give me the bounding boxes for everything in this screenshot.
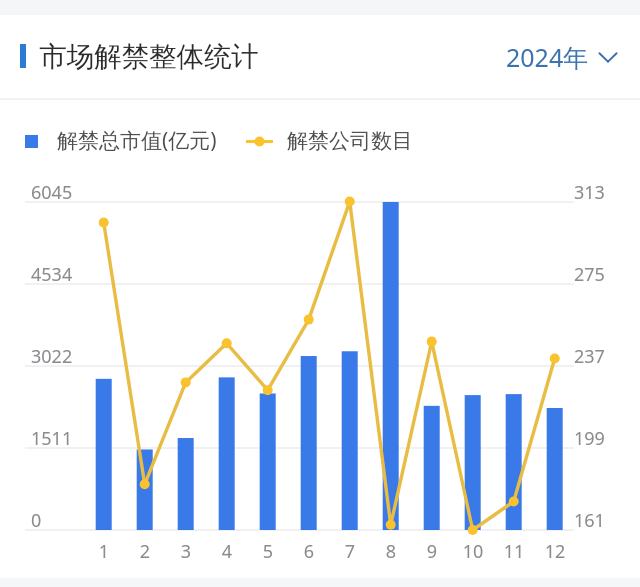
staticText: 解禁总市值(亿元) xyxy=(57,126,217,155)
staticText: 市场解禁整体统计 xyxy=(39,40,259,75)
staticText: 237 xyxy=(574,344,605,369)
staticText: 7 xyxy=(330,539,370,564)
staticText: 0 xyxy=(31,508,42,533)
staticText: 12 xyxy=(535,539,575,564)
staticText: 8 xyxy=(371,539,411,564)
staticText: 9 xyxy=(412,539,452,564)
button[interactable]: 解禁总市值(亿元) xyxy=(21,123,221,160)
staticText: 5 xyxy=(248,539,288,564)
staticText: 解禁公司数目 xyxy=(287,128,413,154)
staticText: 275 xyxy=(574,262,605,287)
other: Monthly share-unlock statistics chart xyxy=(0,0,640,587)
staticText: 1511 xyxy=(31,426,73,451)
staticText: 4 xyxy=(207,539,247,564)
staticText: 11 xyxy=(494,539,534,564)
staticText: 6 xyxy=(289,539,329,564)
staticText: 2024年 xyxy=(506,40,589,74)
button[interactable]: 市场解禁整体统计 xyxy=(12,26,273,85)
staticText: 6045 xyxy=(31,180,73,205)
staticText: 2 xyxy=(125,539,165,564)
button[interactable]: 解禁公司数目 xyxy=(242,123,417,157)
staticText: 161 xyxy=(574,508,605,533)
staticText: 313 xyxy=(574,180,605,205)
staticText: 3 xyxy=(166,539,206,564)
staticText: 199 xyxy=(574,426,605,451)
staticText: 10 xyxy=(453,539,493,564)
staticText: 1 xyxy=(84,539,124,564)
staticText: 3022 xyxy=(31,344,73,369)
button[interactable]: Select year, currently 2024 xyxy=(498,36,627,78)
staticText: 4534 xyxy=(31,262,73,287)
